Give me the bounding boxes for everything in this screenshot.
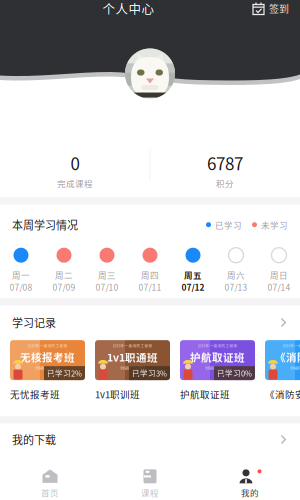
staticText: 学习记录 <box>12 314 56 330</box>
staticText: 周五 <box>184 269 202 281</box>
staticText: 07/10 <box>95 281 118 293</box>
staticText: 周三 <box>98 269 116 281</box>
staticText: 已学习0% <box>217 368 252 379</box>
staticText: 07/11 <box>138 281 161 293</box>
staticText: 已学习 <box>215 218 242 231</box>
staticText: 全程跟学 不过重读 <box>205 365 230 370</box>
button[interactable]: 课程 <box>100 457 200 500</box>
button[interactable]: 首页 <box>0 457 100 500</box>
staticText: 周日 <box>270 269 288 281</box>
button[interactable]: 我的下载 <box>0 423 300 455</box>
staticText: 2019年一级消防工程师 <box>282 343 300 348</box>
staticText: 周四 <box>141 269 159 281</box>
staticText: 完成课程 <box>57 177 93 189</box>
staticText: 07/13 <box>224 281 247 293</box>
staticText: 0 <box>70 150 79 175</box>
staticText: 2019年一级消防工程师 <box>27 343 67 348</box>
staticText: 周二 <box>55 269 73 281</box>
staticText: 已学习3% <box>132 368 167 379</box>
staticText: 签到 <box>269 1 289 16</box>
staticText: 1v1职训班 <box>95 387 140 401</box>
staticText: 07/14 <box>267 281 290 293</box>
staticText: 周一 <box>12 269 30 281</box>
staticText: 2019年一级消防工程师 <box>112 343 152 348</box>
staticText: 全程跟学 不过重读 <box>120 365 145 370</box>
button[interactable]: 学习记录 <box>0 305 300 339</box>
staticText: 07/08 <box>9 281 32 293</box>
staticText: 本周学习情况 <box>12 217 78 233</box>
button[interactable]: 签到 <box>247 0 294 20</box>
staticText: 无核报考班 <box>20 349 75 364</box>
staticText: 6787 <box>207 150 243 175</box>
staticText: 2019年一级消防工程师 <box>197 343 237 348</box>
staticText: 护航取证班 <box>180 387 230 401</box>
staticText: 积分 <box>216 177 234 189</box>
staticText: 已学习2% <box>47 368 82 379</box>
staticText: 1v1职通班 <box>107 349 158 364</box>
staticText: 护航取证班 <box>190 349 245 364</box>
staticText: 全程跟学 不过重读 <box>290 365 300 370</box>
staticText: 我的 <box>241 486 259 499</box>
button[interactable]: 2019年一级消防工程师 <box>180 340 255 401</box>
staticText: 07/12 <box>181 281 204 293</box>
button[interactable]: 2019年一级消防工程师 <box>10 340 85 401</box>
staticText: 《消防安全 <box>265 387 300 401</box>
button[interactable]: 2019年一级消防工程师 <box>265 340 300 401</box>
button[interactable]: 2019年一级消防工程师 <box>95 340 170 401</box>
staticText: 无忧报考班 <box>10 387 60 401</box>
staticText: 《消防安全 <box>275 349 300 364</box>
button[interactable]: 我的 <box>200 457 300 500</box>
staticText: 我的下载 <box>12 431 56 447</box>
staticText: 课程 <box>141 486 159 499</box>
staticText: 07/09 <box>52 281 75 293</box>
staticText: 个人中心 <box>102 0 154 18</box>
staticText: 小禹 <box>139 48 161 64</box>
staticText: 周六 <box>227 269 245 281</box>
staticText: 全程跟学 不过重读 <box>35 365 60 370</box>
staticText: 未学习 <box>261 218 288 231</box>
staticText: 首页 <box>41 486 59 499</box>
